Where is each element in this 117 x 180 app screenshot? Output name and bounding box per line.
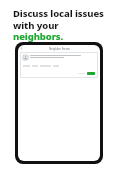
staticText: Neighbor Forum [49, 47, 70, 51]
button[interactable]: Post [87, 72, 95, 75]
button[interactable]: Back [20, 47, 23, 50]
button[interactable]: Post [20, 52, 98, 78]
staticText: Discuss local issues with your neighbors… [13, 7, 111, 43]
